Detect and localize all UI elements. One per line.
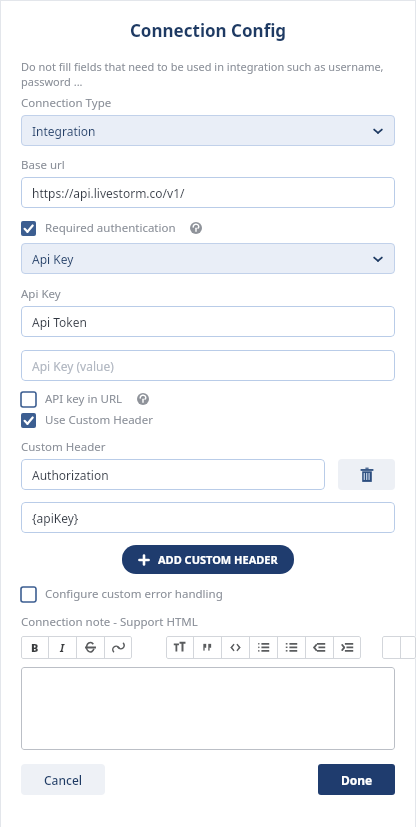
button[interactable]: BLANK bbox=[382, 636, 400, 659]
staticText: Connection Type bbox=[21, 95, 112, 111]
staticText: Cancel bbox=[44, 772, 83, 788]
button[interactable]: LINK bbox=[105, 636, 132, 659]
button[interactable]: I bbox=[49, 636, 76, 659]
button[interactable]: QUOTE bbox=[194, 636, 221, 659]
button[interactable]: Cancel bbox=[21, 764, 105, 795]
staticText: Api Key bbox=[32, 251, 74, 267]
button[interactable]: BLANK bbox=[401, 636, 416, 659]
button[interactable]: Use Custom Header bbox=[21, 412, 153, 428]
button[interactable]: OL bbox=[278, 636, 305, 659]
button[interactable]: INDENT bbox=[334, 636, 361, 659]
other: Help bbox=[190, 222, 202, 234]
button[interactable]: Api Key bbox=[21, 243, 395, 274]
staticText: Base url bbox=[21, 157, 65, 173]
staticText: Required authentication bbox=[45, 220, 176, 236]
button[interactable]: Connection note editor bbox=[21, 667, 395, 750]
button[interactable]: Configure custom error handling bbox=[21, 586, 223, 602]
button[interactable]: {apiKey} bbox=[21, 502, 395, 533]
button[interactable]: B bbox=[21, 636, 48, 659]
other: Help bbox=[137, 393, 149, 405]
button[interactable]: OUTDENT bbox=[306, 636, 333, 659]
staticText: API key in URL bbox=[45, 391, 123, 407]
staticText: Connection Config bbox=[0, 19, 416, 42]
staticText: {apiKey} bbox=[32, 510, 79, 526]
button[interactable]: Delete custom header bbox=[338, 459, 395, 490]
staticText: Integration bbox=[32, 123, 96, 139]
staticText: I bbox=[60, 640, 65, 655]
button[interactable]: API key in URL bbox=[21, 391, 149, 407]
staticText: Api Key (value) bbox=[32, 358, 114, 374]
staticText: Done bbox=[341, 772, 373, 788]
staticText: Do not fill fields that need to be used … bbox=[21, 59, 395, 89]
button[interactable]: TT bbox=[166, 636, 193, 659]
staticText: Api Token bbox=[32, 314, 87, 330]
staticText: Custom Header bbox=[21, 439, 106, 455]
button[interactable]: S bbox=[77, 636, 104, 659]
button[interactable]: https://api.livestorm.co/v1/ bbox=[21, 177, 395, 208]
button[interactable]: CODE bbox=[222, 636, 249, 659]
staticText: Authorization bbox=[32, 467, 109, 483]
staticText: Configure custom error handling bbox=[45, 586, 223, 602]
button[interactable]: Authorization bbox=[21, 459, 325, 490]
staticText: ADD CUSTOM HEADER bbox=[158, 552, 278, 567]
button[interactable]: Api Key (value) bbox=[21, 350, 395, 381]
button[interactable]: ADD CUSTOM HEADER bbox=[122, 545, 294, 574]
button[interactable]: Api Token bbox=[21, 306, 395, 337]
button[interactable]: Done bbox=[318, 764, 395, 795]
button[interactable]: Required authentication bbox=[21, 220, 202, 236]
staticText: Use Custom Header bbox=[45, 412, 153, 428]
staticText: Api Key bbox=[21, 286, 61, 302]
button[interactable]: Integration bbox=[21, 115, 395, 146]
staticText: B bbox=[31, 640, 39, 655]
staticText: https://api.livestorm.co/v1/ bbox=[32, 185, 185, 201]
staticText: Connection note - Support HTML bbox=[21, 614, 198, 630]
button[interactable]: UL bbox=[250, 636, 277, 659]
